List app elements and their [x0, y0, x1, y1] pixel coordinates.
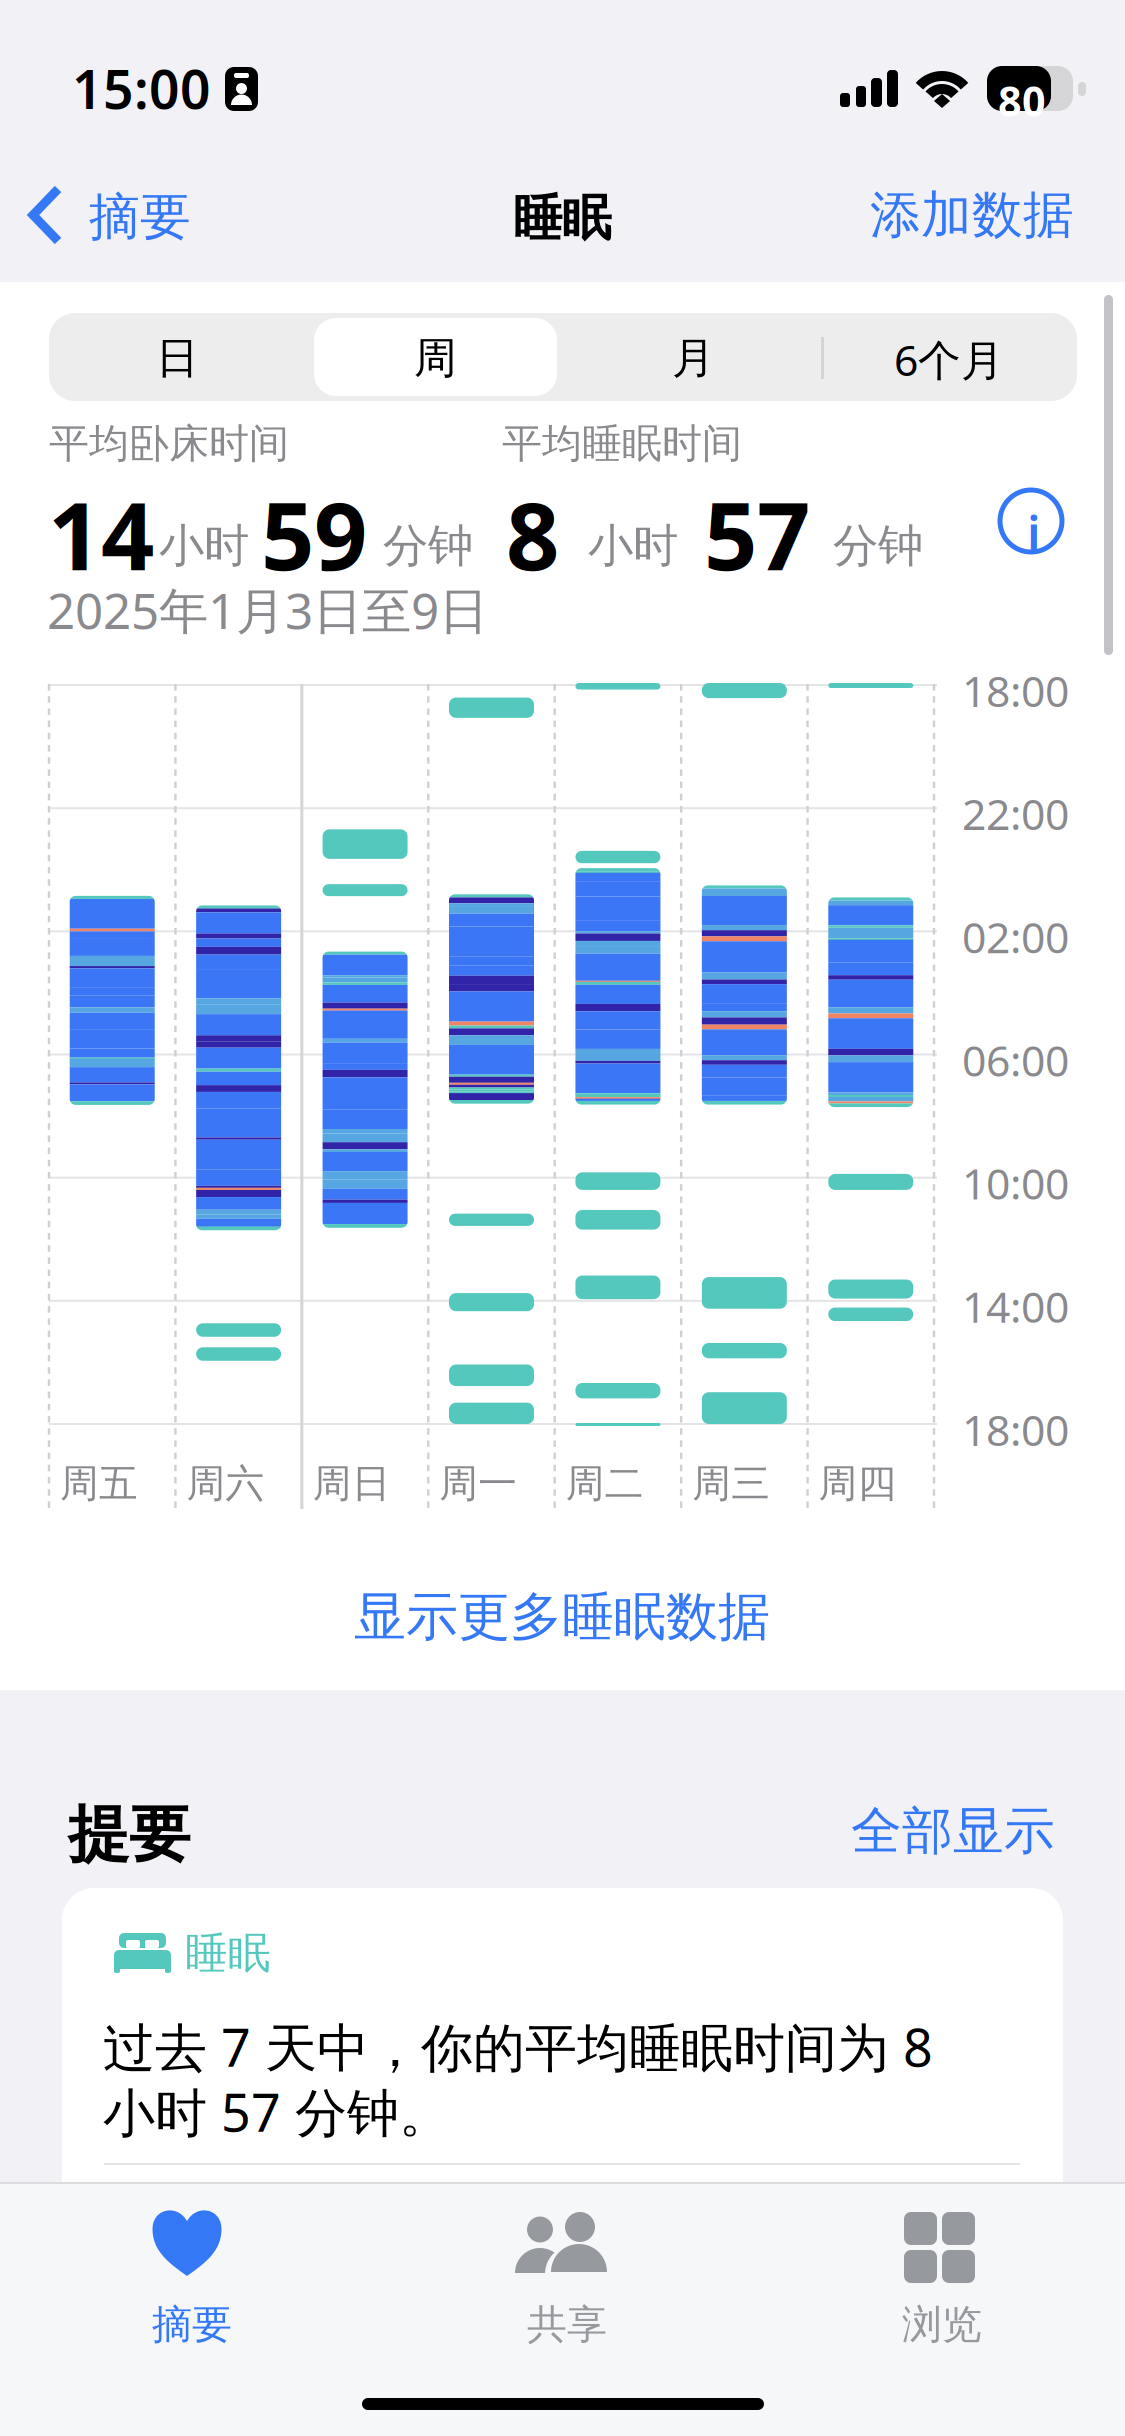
staticText: 14:00	[962, 1278, 1069, 1334]
staticText: 14	[48, 472, 154, 596]
staticText: 周日	[313, 1460, 391, 1507]
staticText: 平均卧床时间	[49, 419, 289, 468]
staticText: 提要	[68, 1797, 190, 1872]
staticText: 共享	[527, 2300, 607, 2349]
staticText: 18:00	[962, 662, 1069, 719]
staticText: 15:00	[72, 53, 211, 124]
staticText: 睡眠	[513, 188, 611, 249]
button[interactable]: 日	[0, 0, 257, 88]
staticText: 月	[672, 332, 715, 384]
staticText: 周一	[439, 1460, 517, 1507]
staticText: 全部显示	[851, 1800, 1055, 1862]
staticText: 周三	[692, 1460, 770, 1507]
button[interactable]: 月	[0, 0, 257, 88]
staticText: 周二	[566, 1460, 644, 1507]
staticText: 2025年1月3日至9日	[47, 577, 488, 642]
button[interactable]: 共享	[0, 0, 1125, 2436]
button[interactable]: 全部显示	[0, 0, 232, 86]
button[interactable]: 摘要	[0, 0, 1125, 2436]
staticText: 6个月	[894, 331, 1004, 388]
staticText: i	[1027, 501, 1041, 565]
staticText: 10:00	[962, 1155, 1069, 1211]
staticText: 过去 7 天中，你的平均睡眠时间为 8	[103, 2012, 933, 2081]
staticText: 平均睡眠时间	[502, 419, 742, 468]
staticText: 06:00	[962, 1031, 1069, 1088]
staticText: 18:00	[962, 1401, 1069, 1458]
staticText: 分钟	[383, 518, 473, 574]
button[interactable]: 关于睡眠数据	[0, 0, 82, 82]
staticText: 周六	[186, 1460, 264, 1507]
staticText: 分钟	[833, 518, 923, 574]
button[interactable]: 睡眠	[0, 0, 1001, 400]
button[interactable]: 6个月	[0, 0, 253, 88]
staticText: 添加数据	[870, 184, 1074, 246]
button[interactable]: 添加数据	[0, 0, 235, 96]
staticText: 周	[414, 332, 457, 384]
button[interactable]: 浏览	[0, 0, 375, 160]
staticText: 周四	[819, 1460, 897, 1507]
staticText: 59	[261, 472, 367, 596]
staticText: 浏览	[902, 2300, 982, 2349]
staticText: 小时 57 分钟。	[103, 2077, 451, 2146]
staticText: 显示更多睡眠数据	[354, 1585, 770, 1649]
staticText: 小时	[159, 518, 249, 574]
button[interactable]: 摘要	[0, 0, 1125, 2436]
staticText: 57	[704, 472, 810, 596]
staticText: 睡眠	[185, 1927, 271, 1979]
staticText: 80	[998, 73, 1046, 128]
staticText: 周五	[60, 1460, 138, 1507]
staticText: 小时	[588, 518, 678, 574]
staticText: 摘要	[89, 186, 191, 248]
staticText: 日	[156, 332, 199, 384]
button[interactable]: 显示更多睡眠数据	[0, 0, 1125, 125]
staticText: 8	[506, 472, 559, 596]
staticText: 02:00	[962, 908, 1069, 965]
button[interactable]: 周	[0, 0, 243, 78]
staticText: 摘要	[152, 2300, 232, 2349]
staticText: 22:00	[962, 785, 1069, 842]
